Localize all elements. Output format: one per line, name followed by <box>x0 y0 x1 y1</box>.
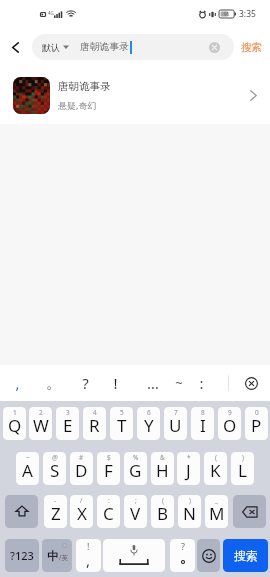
staticText: 3:35 <box>239 8 256 20</box>
staticText: ! <box>87 540 90 552</box>
button[interactable]: Shift <box>5 495 38 528</box>
staticText: K <box>210 459 221 482</box>
staticText: X <box>77 502 87 525</box>
button[interactable]: I <box>191 407 214 440</box>
staticText: 0 <box>255 408 259 417</box>
staticText: ! <box>113 373 118 393</box>
staticText: ( <box>162 496 164 505</box>
button[interactable]: C <box>97 495 120 528</box>
staticText: 7 <box>174 408 178 417</box>
button[interactable]: , <box>2 365 32 401</box>
staticText: # <box>79 453 84 462</box>
button[interactable]: , <box>76 539 101 572</box>
staticText: U <box>169 414 182 437</box>
staticText: , <box>86 550 91 570</box>
button[interactable]: E <box>56 407 79 440</box>
button[interactable]: 唐朝诡事录 <box>0 66 270 124</box>
button[interactable]: B <box>151 495 174 528</box>
staticText: M <box>209 502 225 525</box>
button[interactable]: K <box>204 452 227 485</box>
button[interactable]: G <box>124 452 147 485</box>
staticText: 4G <box>48 10 54 16</box>
button[interactable]: Emoji <box>197 539 220 572</box>
button[interactable]: Q <box>3 407 26 440</box>
button[interactable]: Back <box>0 28 30 66</box>
button[interactable]: H <box>151 452 174 485</box>
staticText: & <box>160 453 165 462</box>
button[interactable]: M <box>205 495 228 528</box>
button[interactable]: F <box>97 452 120 485</box>
staticText: 95 <box>224 11 230 17</box>
button[interactable]: ?123 <box>5 539 39 572</box>
staticText: 搜索 <box>234 548 258 563</box>
staticText: - <box>54 496 57 505</box>
button[interactable]: Z <box>44 495 67 528</box>
button[interactable]: O <box>218 407 241 440</box>
staticText: 悬疑,奇幻 <box>58 99 97 111</box>
staticText: R <box>89 414 100 437</box>
button[interactable]: ? <box>70 365 100 401</box>
button[interactable]: 中 <box>42 539 72 572</box>
staticText: 。 <box>46 374 61 393</box>
staticText: /英 <box>59 553 68 562</box>
staticText: ) <box>242 453 244 462</box>
button[interactable]: X <box>70 495 93 528</box>
button[interactable]: Hide keyboard <box>236 365 266 401</box>
staticText: P <box>251 414 262 437</box>
staticText: 默认 <box>42 42 60 53</box>
button[interactable]: L <box>231 452 254 485</box>
staticText: A <box>22 459 33 482</box>
staticText: O <box>223 414 237 437</box>
staticText: : <box>199 373 204 393</box>
staticText: 1 <box>13 408 17 417</box>
button[interactable]: R <box>83 407 106 440</box>
staticText: ( <box>215 453 217 462</box>
staticText: C <box>103 502 114 525</box>
button[interactable]: S <box>43 452 66 485</box>
button[interactable]: 搜索 <box>223 539 268 572</box>
staticText: … <box>147 373 159 393</box>
button[interactable]: N <box>178 495 201 528</box>
button[interactable]: T <box>110 407 133 440</box>
button[interactable]: ? <box>170 539 195 572</box>
staticText: L <box>238 459 247 482</box>
staticText: * <box>187 453 191 462</box>
staticText: F <box>104 459 113 482</box>
button[interactable]: V <box>124 495 147 528</box>
staticText: ; <box>135 496 137 505</box>
staticText: $ <box>107 453 111 462</box>
button[interactable]: W <box>29 407 52 440</box>
staticText: _ <box>215 496 218 505</box>
button[interactable]: … <box>138 365 168 401</box>
staticText: S <box>50 459 60 482</box>
button[interactable]: ~ <box>164 365 194 401</box>
button[interactable]: 。 <box>38 365 68 401</box>
button[interactable]: 默认 <box>32 34 234 60</box>
staticText: V <box>130 502 141 525</box>
staticText: 唐朝诡事录 <box>58 80 111 93</box>
staticText: 3 <box>66 408 70 417</box>
staticText: ~ <box>26 453 30 462</box>
staticText: 唐朝诡事录 <box>80 41 129 53</box>
staticText: ?123 <box>10 548 34 563</box>
staticText: @ <box>52 453 58 462</box>
staticText: 8 <box>201 408 205 417</box>
button[interactable]: Y <box>137 407 160 440</box>
button[interactable]: Space <box>103 539 165 572</box>
staticText: ? <box>181 540 185 552</box>
staticText: 4 <box>93 408 97 417</box>
button[interactable]: : <box>186 365 216 401</box>
staticText: N <box>183 502 196 525</box>
button[interactable]: J <box>177 452 200 485</box>
button[interactable]: A <box>16 452 39 485</box>
button[interactable]: ! <box>100 365 130 401</box>
button[interactable]: P <box>245 407 268 440</box>
button[interactable]: Backspace <box>233 495 266 528</box>
button[interactable]: Clear text <box>203 36 225 58</box>
staticText: ~ <box>175 374 183 392</box>
staticText: Q <box>8 414 22 437</box>
button[interactable]: U <box>164 407 187 440</box>
staticText: 6 <box>147 408 151 417</box>
button[interactable]: 搜索 <box>236 28 266 66</box>
button[interactable]: D <box>70 452 93 485</box>
